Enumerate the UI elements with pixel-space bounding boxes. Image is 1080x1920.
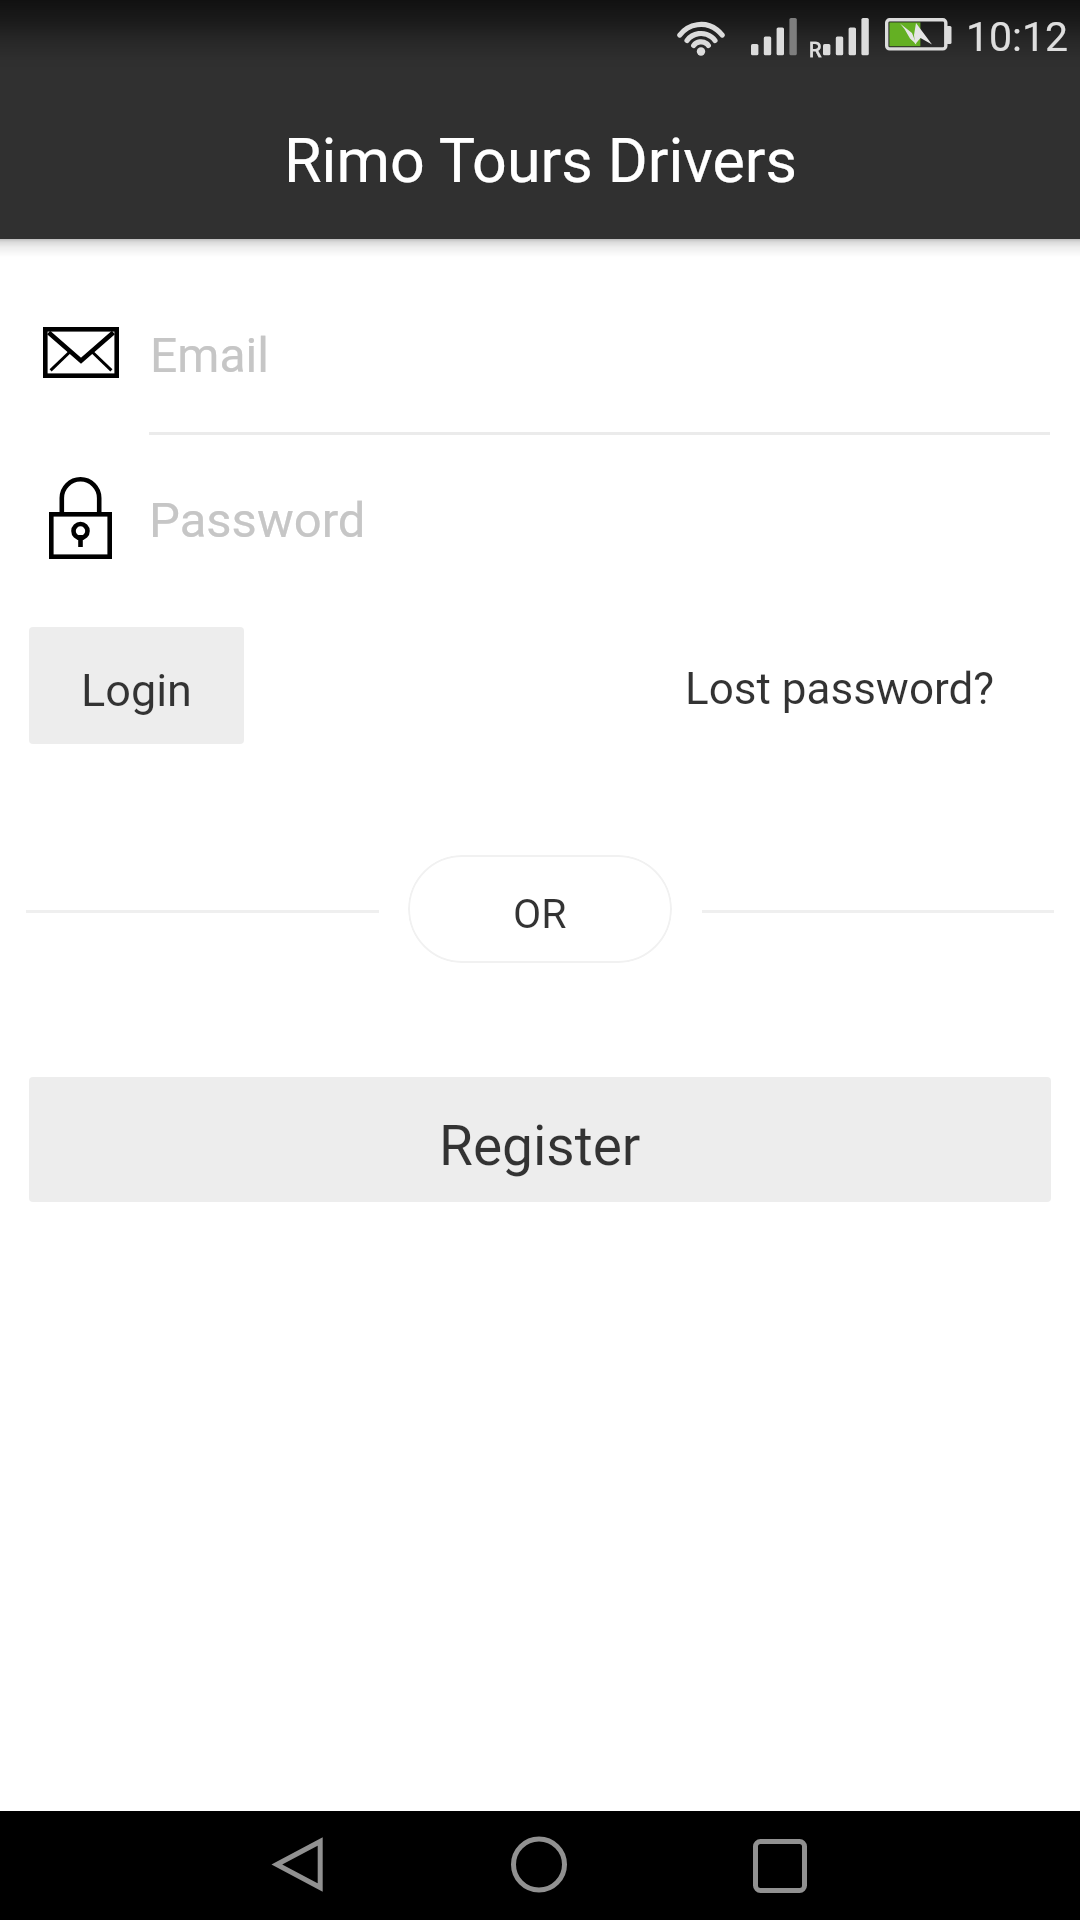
button[interactable]: Lost password? <box>670 645 1009 733</box>
button[interactable]: Recent apps <box>690 1811 870 1920</box>
button[interactable]: Register <box>29 1077 1051 1202</box>
staticText: Login <box>81 664 192 717</box>
staticText: Password <box>149 492 366 549</box>
button[interactable]: Home <box>450 1811 630 1920</box>
staticText: Lost password? <box>685 663 995 715</box>
staticText: R <box>809 38 822 61</box>
button[interactable]: Password <box>149 468 1050 573</box>
staticText: Register <box>439 1114 641 1178</box>
staticText: Email <box>150 327 269 383</box>
button[interactable]: Email <box>150 302 1051 407</box>
button[interactable]: Back <box>210 1811 390 1920</box>
staticText: 10:12 <box>966 13 1069 61</box>
staticText: Rimo Tours Drivers <box>284 125 797 196</box>
staticText: OR <box>513 890 567 938</box>
button[interactable]: Login <box>29 627 244 744</box>
